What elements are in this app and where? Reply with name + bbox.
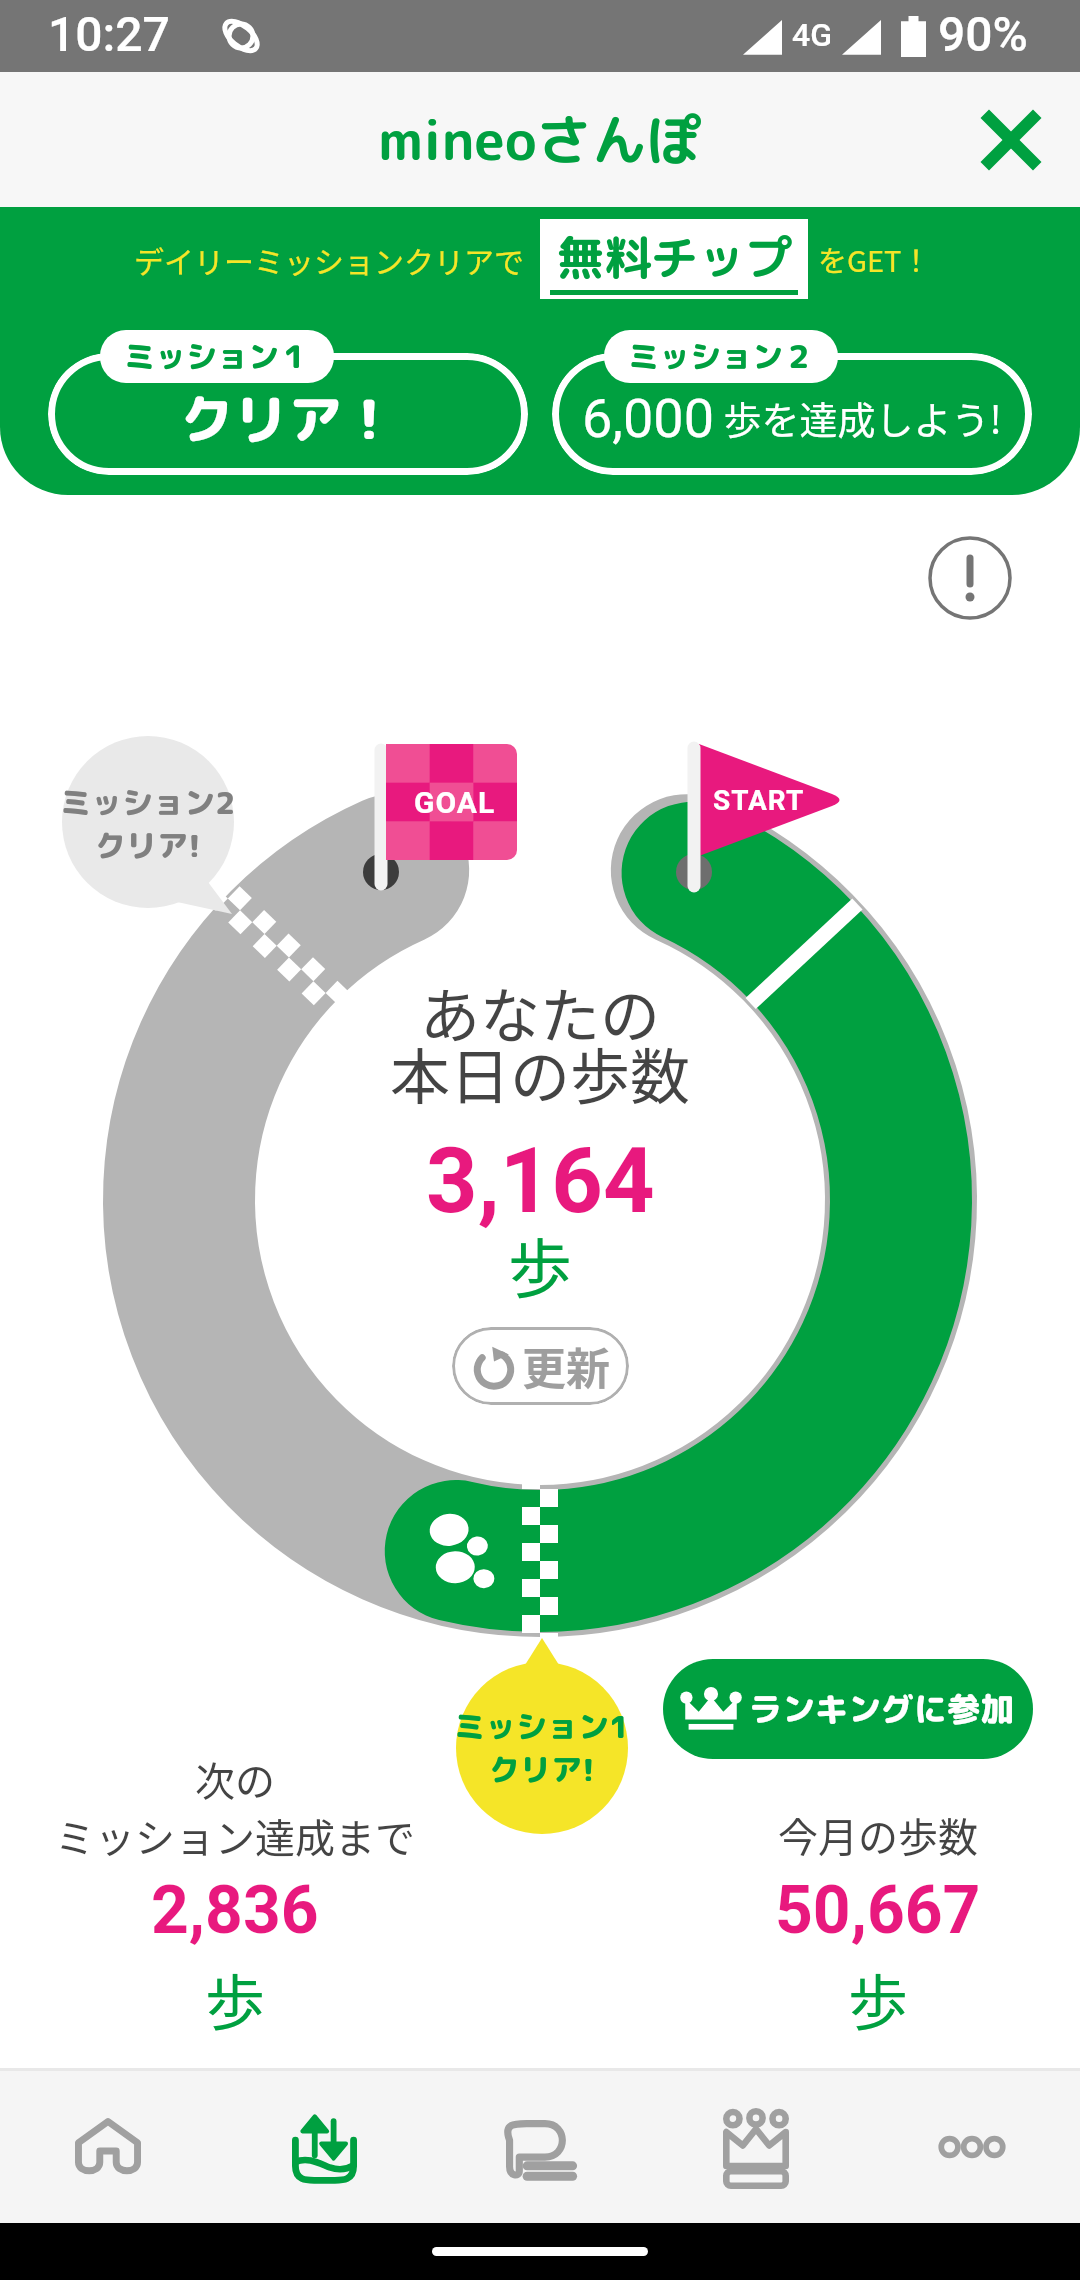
- staticText: ランキングに参加: [749, 1686, 1013, 1732]
- staticText: 歩: [205, 1955, 265, 2042]
- staticText: mineoさんぽ: [378, 101, 702, 178]
- staticText: ミッション２: [628, 335, 814, 378]
- staticText: 歩: [508, 1218, 572, 1311]
- button[interactable]: 更新: [452, 1327, 629, 1405]
- button[interactable]: Home: [0, 2071, 216, 2223]
- button[interactable]: ランキングに参加: [663, 1659, 1033, 1759]
- button[interactable]: Ranking: [648, 2071, 864, 2223]
- staticText: 無料チップ: [557, 224, 792, 290]
- staticText: 6,000: [582, 387, 715, 450]
- button[interactable]: Close: [969, 98, 1053, 182]
- staticText: クリア!: [95, 824, 201, 867]
- staticText: あなたの 本日の歩数: [390, 968, 690, 1116]
- staticText: ミッション１: [124, 335, 310, 378]
- button[interactable]: Steps: [216, 2071, 432, 2223]
- staticText: 歩を達成しよう!: [715, 390, 1002, 445]
- staticText: クリア!: [489, 1748, 595, 1791]
- button[interactable]: Information: [920, 528, 1020, 628]
- button[interactable]: More: [864, 2071, 1080, 2223]
- staticText: 50,667: [775, 1872, 981, 1949]
- staticText: ミッション1: [454, 1705, 630, 1748]
- button[interactable]: クリア！: [48, 330, 528, 475]
- staticText: 歩: [848, 1955, 908, 2042]
- staticText: 更新: [522, 1334, 610, 1398]
- staticText: 10:27: [48, 6, 170, 62]
- button[interactable]: 6,000: [552, 330, 1032, 475]
- button[interactable]: Messages: [432, 2071, 648, 2223]
- staticText: 今月の歩数: [778, 1806, 978, 1864]
- staticText: 4G: [792, 16, 832, 54]
- staticText: ミッション2: [60, 781, 236, 824]
- staticText: 3,164: [426, 1129, 655, 1234]
- staticText: START: [713, 784, 805, 816]
- staticText: 90%: [938, 6, 1028, 62]
- staticText: をGET！: [818, 238, 931, 280]
- staticText: デイリーミッションクリアで: [134, 238, 524, 281]
- staticText: 次の ミッション達成まで: [55, 1750, 415, 1864]
- staticText: GOAL: [414, 785, 496, 817]
- staticText: クリア！: [180, 381, 396, 456]
- staticText: 2,836: [151, 1872, 319, 1949]
